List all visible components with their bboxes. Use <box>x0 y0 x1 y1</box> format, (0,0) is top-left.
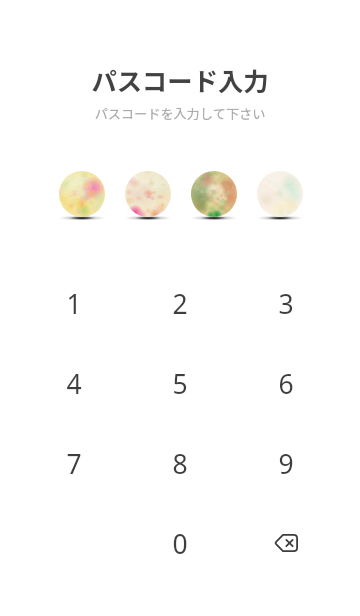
button[interactable]: 1 <box>21 264 127 344</box>
button[interactable]: 8 <box>127 424 233 504</box>
staticText: 4 <box>66 366 82 402</box>
staticText: 0 <box>172 526 188 562</box>
staticText: 1 <box>66 286 82 322</box>
staticText: 9 <box>278 446 294 482</box>
button[interactable]: 4 <box>21 344 127 424</box>
staticText: 7 <box>66 446 82 482</box>
staticText: 8 <box>172 446 188 482</box>
button[interactable]: 5 <box>127 344 233 424</box>
staticText: パスコード入力 <box>0 62 360 99</box>
button[interactable]: 6 <box>233 344 339 424</box>
staticText: 5 <box>172 366 188 402</box>
button[interactable]: 2 <box>127 264 233 344</box>
button[interactable]: 9 <box>233 424 339 504</box>
staticText: パスコードを入力して下さい <box>0 104 360 123</box>
staticText: 2 <box>172 286 188 322</box>
button[interactable]: 0 <box>127 504 233 584</box>
staticText: 6 <box>278 366 294 402</box>
staticText: 3 <box>278 286 294 322</box>
button[interactable]: Backspace <box>233 504 339 584</box>
button[interactable]: 7 <box>21 424 127 504</box>
button[interactable]: 3 <box>233 264 339 344</box>
